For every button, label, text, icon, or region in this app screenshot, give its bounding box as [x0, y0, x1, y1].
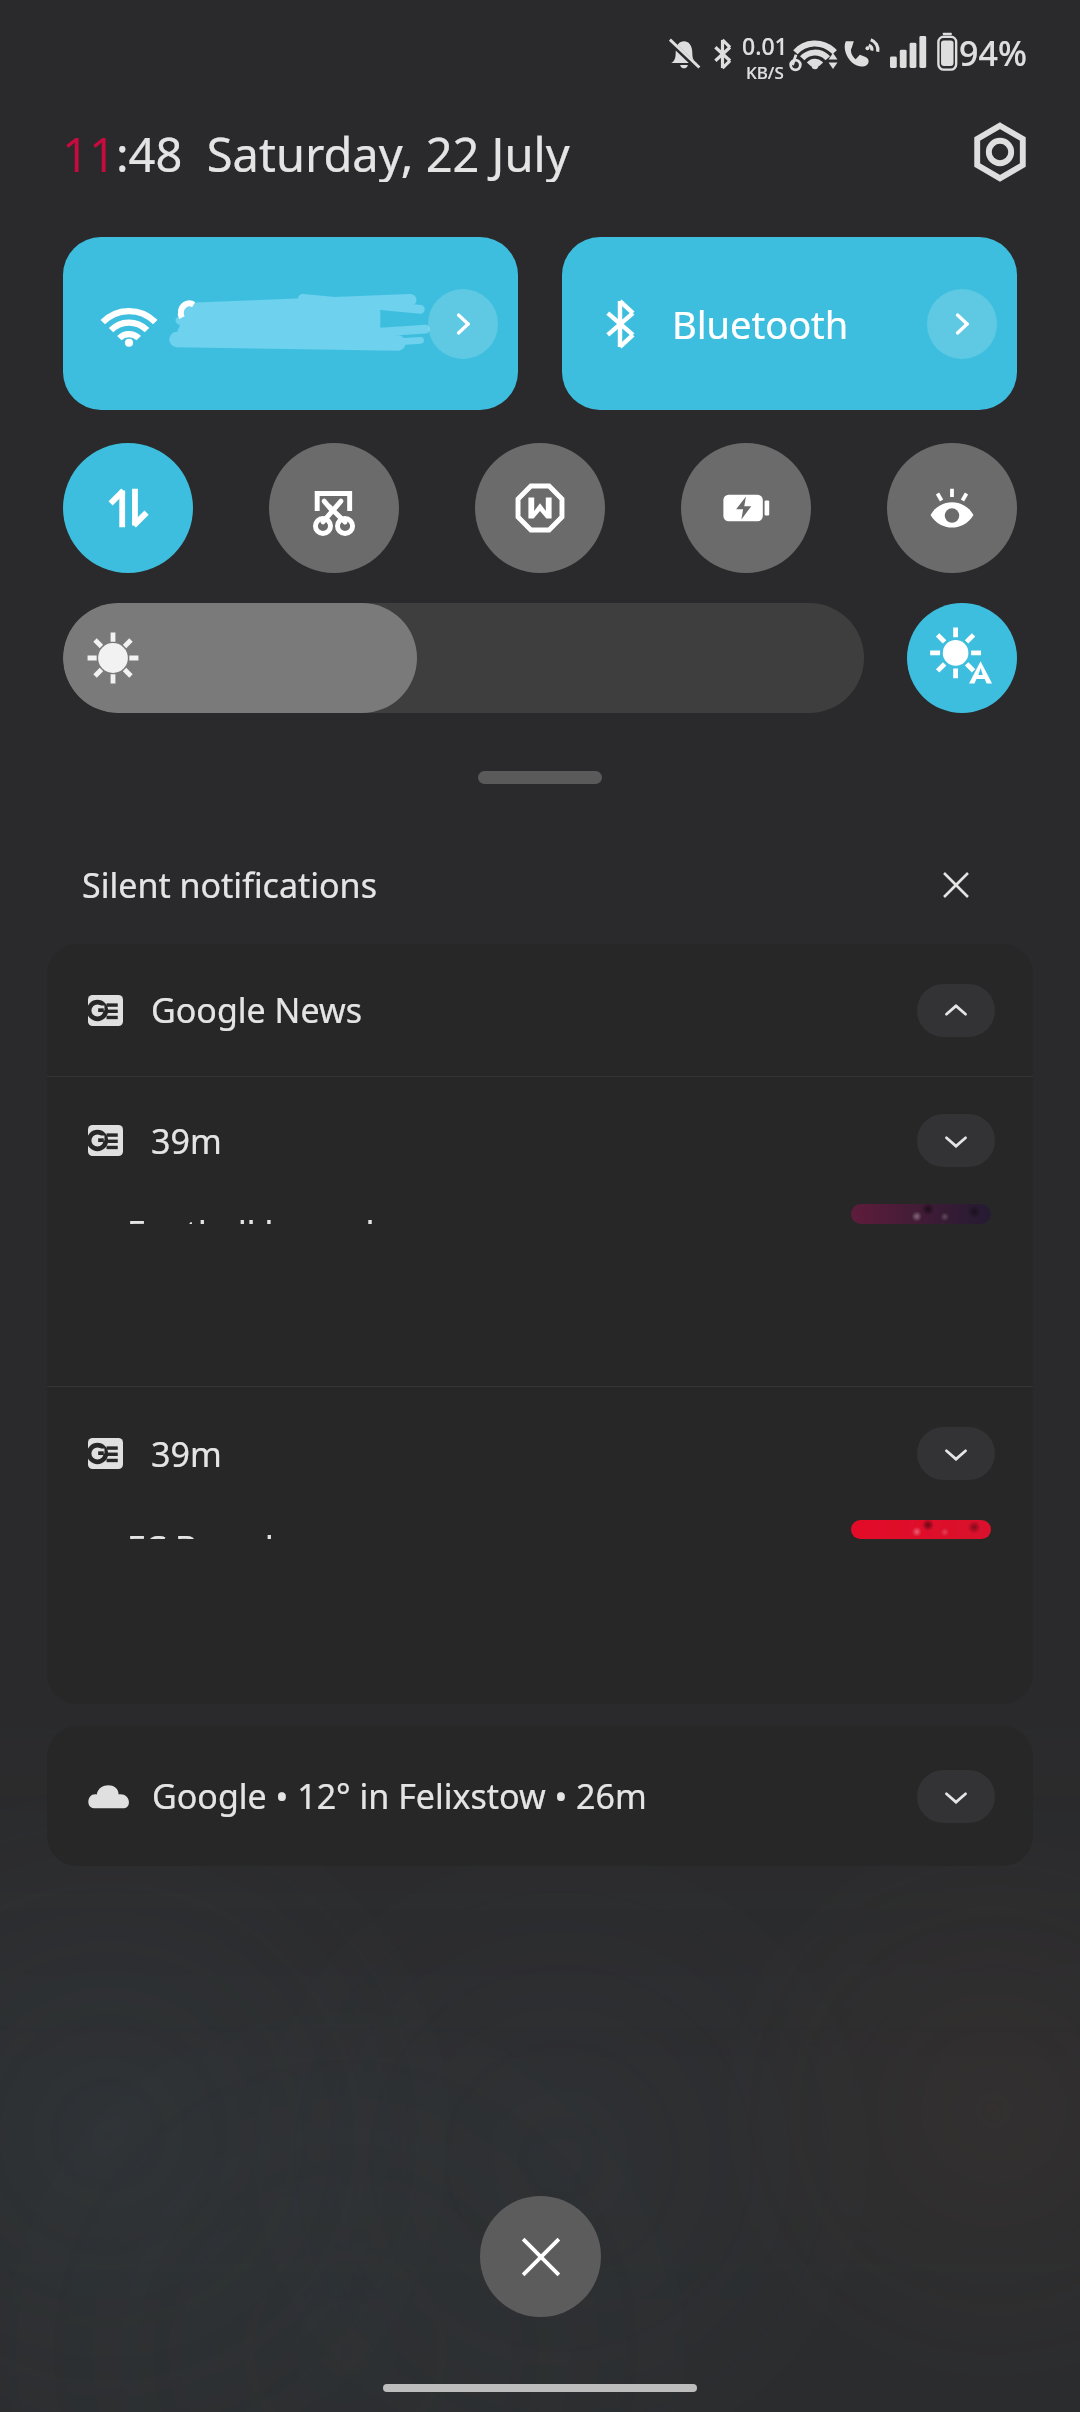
- staticText: Bluetooth: [672, 298, 927, 350]
- button[interactable]: Collapse: [917, 984, 995, 1037]
- button[interactable]: Screenshot: [269, 443, 399, 573]
- button[interactable]: Brightness: [63, 603, 864, 713]
- button[interactable]: Google • 12° in Felixstow • 26m: [47, 1726, 1033, 1866]
- staticText: 39m: [151, 1118, 917, 1164]
- staticText: 39m: [151, 1431, 917, 1477]
- button[interactable]: Close: [480, 2196, 601, 2317]
- staticText: Google News: [151, 987, 917, 1033]
- button[interactable]: Expand: [917, 1770, 995, 1823]
- staticText: Google • 12° in Felixstow • 26m: [152, 1773, 917, 1819]
- button[interactable]: Wi-Fi: [63, 237, 518, 410]
- staticText: Silent notifications: [82, 862, 377, 908]
- staticText: FC Barcelona: [127, 1525, 335, 1539]
- staticText: 11: [62, 122, 116, 182]
- button[interactable]: 39m: [47, 1077, 1033, 1204]
- button[interactable]: Expand: [917, 1114, 995, 1167]
- staticText: :48 Saturday, 22 July: [116, 122, 570, 182]
- staticText: KB/S: [746, 61, 784, 84]
- button[interactable]: Clear silent notifications: [924, 853, 988, 917]
- button[interactable]: Eye comfort: [887, 443, 1017, 573]
- staticText: 0.01: [742, 30, 788, 61]
- button[interactable]: Wallpaper: [475, 443, 605, 573]
- button[interactable]: Expand: [917, 1427, 995, 1480]
- staticText: Football legend: [127, 1210, 375, 1224]
- button[interactable]: Battery saver: [681, 443, 811, 573]
- staticText: 94%: [959, 30, 1027, 76]
- button[interactable]: Bluetooth: [562, 237, 1017, 410]
- button[interactable]: Auto brightness: [907, 603, 1017, 713]
- button[interactable]: Settings: [970, 122, 1030, 182]
- button[interactable]: Google News: [47, 944, 1033, 1076]
- button[interactable]: Mobile data: [63, 443, 193, 573]
- button[interactable]: 39m: [47, 1387, 1033, 1520]
